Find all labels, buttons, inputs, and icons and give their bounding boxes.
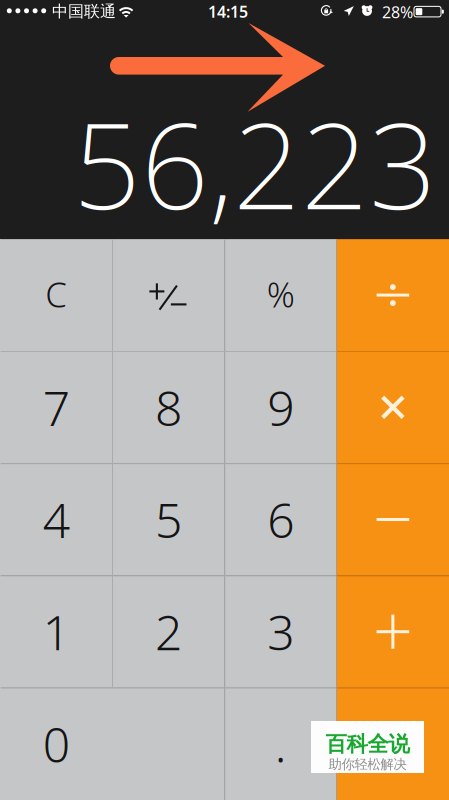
staticText: 28% (382, 1, 413, 23)
button[interactable]: 9 (224, 351, 337, 463)
button[interactable]: 1 (0, 576, 112, 688)
staticText: 2 (155, 600, 182, 663)
staticText: 中国联通 (52, 1, 116, 21)
button[interactable]: C (0, 239, 112, 351)
button[interactable]: Equals (337, 688, 449, 800)
staticText: . (275, 712, 287, 776)
button[interactable]: 7 (0, 351, 112, 463)
staticText: C (45, 271, 67, 317)
staticText: 1 (43, 600, 70, 663)
staticText: 3 (267, 600, 294, 663)
staticText: 5 (155, 488, 182, 551)
button[interactable]: . (224, 688, 337, 800)
staticText: 56,223 (73, 84, 437, 242)
staticText: 14:15 (208, 1, 248, 22)
button[interactable]: Subtract (337, 463, 449, 576)
button[interactable]: Add (337, 576, 449, 688)
button[interactable]: 8 (112, 351, 224, 463)
staticText: 6 (267, 488, 294, 551)
button[interactable]: % (224, 239, 337, 351)
staticText: % (267, 271, 295, 317)
button[interactable]: 4 (0, 463, 112, 576)
staticText: 9 (267, 375, 294, 439)
button[interactable]: Toggle sign (112, 239, 224, 351)
button[interactable]: 6 (224, 463, 337, 576)
staticText: 4 (43, 488, 70, 551)
button[interactable]: 5 (112, 463, 224, 576)
button[interactable]: Multiply (337, 351, 449, 463)
button[interactable]: 2 (112, 576, 224, 688)
button[interactable]: 3 (224, 576, 337, 688)
button[interactable]: 0 (0, 688, 224, 800)
button[interactable]: Divide (337, 239, 449, 351)
staticText: 百科全说 (325, 731, 409, 757)
staticText: 8 (155, 375, 182, 439)
staticText: 7 (43, 375, 70, 439)
staticText: 助你轻松解决 (328, 756, 406, 772)
staticText: 0 (43, 712, 70, 776)
